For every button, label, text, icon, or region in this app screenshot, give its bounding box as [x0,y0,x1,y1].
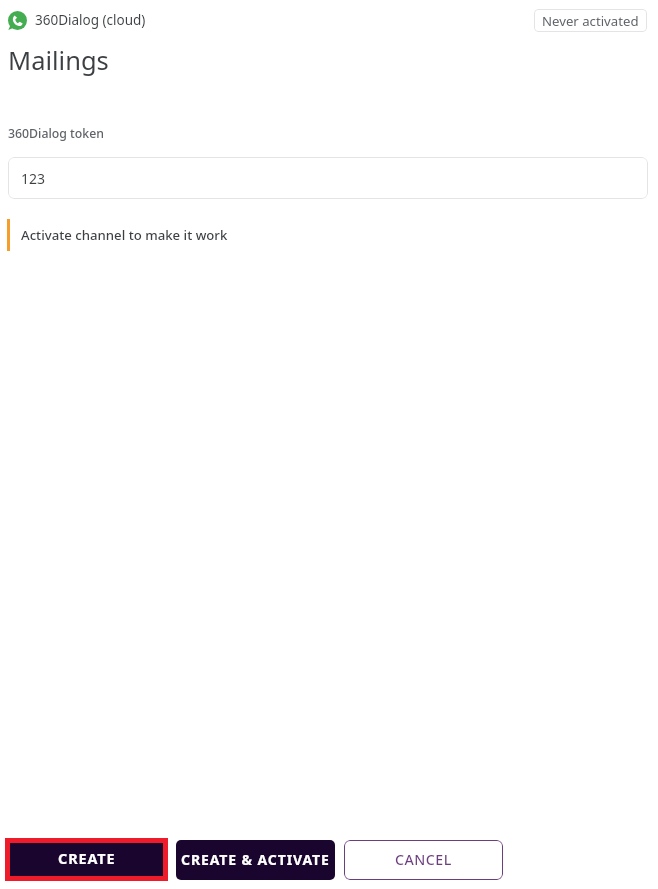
button[interactable]: CREATE & ACTIVATE [176,840,335,880]
staticText: CREATE & ACTIVATE [181,850,330,869]
button[interactable]: CREATE [10,843,163,876]
staticText: CANCEL [395,850,452,869]
staticText: Activate channel to make it work [21,226,228,244]
staticText: 360Dialog (cloud) [35,11,146,29]
button[interactable]: CANCEL [344,840,503,880]
staticText: 360Dialog token [8,125,104,142]
button[interactable]: 123 [8,157,648,199]
staticText: 123 [21,169,46,188]
button[interactable]: Never activated [534,9,647,32]
other: WhatsApp channel [8,11,27,30]
staticText: CREATE [58,849,116,869]
staticText: Never activated [542,12,639,30]
staticText: Mailings [8,43,109,78]
